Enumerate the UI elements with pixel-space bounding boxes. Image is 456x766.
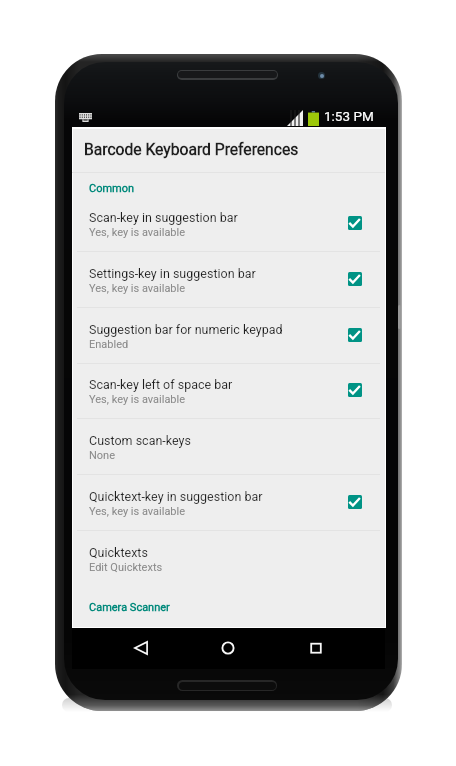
button[interactable]: Barcode Keyboard Preferences	[72, 128, 385, 172]
button[interactable]: Common	[72, 176, 385, 196]
button[interactable]: Scan-key left of space bar	[72, 363, 385, 419]
staticText: Suggestion bar for numeric keypad	[89, 322, 283, 337]
button[interactable]: Quicktexts	[72, 531, 385, 587]
staticText: Scan-key left of space bar	[89, 377, 233, 392]
staticText: Yes, key is available	[89, 505, 186, 518]
button[interactable]: Custom scan-keys	[72, 419, 385, 475]
button[interactable]: Suggestion bar for numeric keypad	[72, 308, 385, 364]
staticText: Yes, key is available	[89, 226, 186, 239]
staticText: Settings-key in suggestion bar	[89, 266, 256, 281]
staticText: Quicktext-key in suggestion bar	[89, 489, 263, 504]
staticText: None	[89, 449, 116, 462]
button[interactable]: Back	[122, 628, 160, 669]
staticText: 1:53 PM	[324, 108, 374, 124]
staticText: Yes, key is available	[89, 393, 186, 406]
staticText: Quicktexts	[89, 545, 148, 560]
staticText: Enabled	[89, 338, 129, 351]
button[interactable]: Home	[209, 628, 247, 669]
staticText: Camera Scanner	[89, 601, 170, 614]
button[interactable]: Recent apps	[297, 628, 335, 669]
button[interactable]: Scan-key in suggestion bar	[72, 196, 385, 252]
staticText: Custom scan-keys	[89, 433, 191, 448]
staticText: Yes, key is available	[89, 282, 186, 295]
button[interactable]: Quicktext-key in suggestion bar	[72, 475, 385, 531]
staticText: Barcode Keyboard Preferences	[84, 140, 299, 158]
staticText: Scan-key in suggestion bar	[89, 210, 238, 225]
button[interactable]: Settings-key in suggestion bar	[72, 252, 385, 308]
staticText: Common	[89, 182, 135, 195]
staticText: Edit Quicktexts	[89, 561, 163, 574]
button[interactable]: Camera Scanner	[72, 595, 385, 615]
